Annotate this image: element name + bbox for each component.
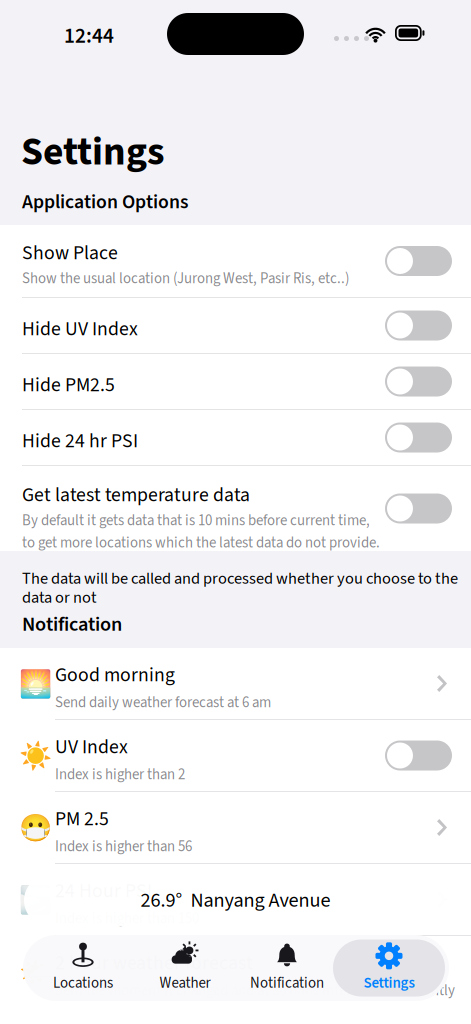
staticText: 24 Hour PSI [55,877,152,905]
button[interactable]: Hide UV Index [0,298,471,353]
staticText: The data will be called and processed wh… [22,567,458,590]
staticText: to get more locations which the latest d… [22,532,380,553]
button[interactable]: Get latest temperature data [0,466,471,551]
staticText: 2 hour weather forecast [55,949,253,977]
staticText: Sent the moment it changed and at 30 min… [55,980,455,1001]
button[interactable]: Show Place [0,225,471,297]
staticText: Hide 24 hr PSI [22,427,138,455]
button[interactable]: 🌅 [0,648,471,719]
staticText: Settings [21,124,165,180]
staticText: Show the usual location (Jurong West, Pa… [22,268,350,289]
button[interactable]: 🌫️ [0,864,471,935]
button[interactable]: Notification [236,935,338,1001]
staticText: UV Index [55,733,128,761]
staticText: 😷 [19,813,52,843]
button[interactable]: 🌤️ [0,936,471,1007]
staticText: 🌫️ [19,885,52,915]
button[interactable]: Hide 24 hr PSI [0,410,471,465]
staticText: Notification [250,972,324,994]
staticText: Send daily weather forecast at 6 am [55,692,271,713]
staticText: Good morning [55,661,175,689]
staticText: Get latest temperature data [22,481,250,509]
button[interactable]: Weather [134,935,236,1001]
staticText: ☀️ [19,741,52,771]
staticText: Notification [22,610,122,639]
staticText: 12:44 [64,21,114,51]
staticText: 🌅 [19,669,52,699]
button[interactable]: Settings [338,935,440,1001]
staticText: Application Options [22,188,188,216]
staticText: Hide PM2.5 [22,371,115,399]
staticText: Settings [363,972,414,994]
staticText: Locations [53,972,113,994]
button[interactable]: Hide PM2.5 [0,354,471,409]
staticText: PM 2.5 [55,805,109,833]
button[interactable]: ☀️ [0,720,471,791]
staticText: Show Place [22,239,118,267]
staticText: Index is higher than 56 [55,836,192,857]
staticText: Weather [159,972,210,994]
button[interactable]: 26.9° Nanyang Avenue [24,875,447,926]
staticText: data or not [22,586,97,609]
button[interactable]: 😷 [0,792,471,863]
staticText: 🌤️ [19,957,52,987]
staticText: Index is higher than 2 [55,764,185,785]
staticText: By default it gets data that is 10 mins … [22,510,370,531]
button[interactable]: Locations [32,935,134,1001]
staticText: 26.9° Nanyang Avenue [140,886,330,915]
staticText: Hide UV Index [22,315,138,343]
